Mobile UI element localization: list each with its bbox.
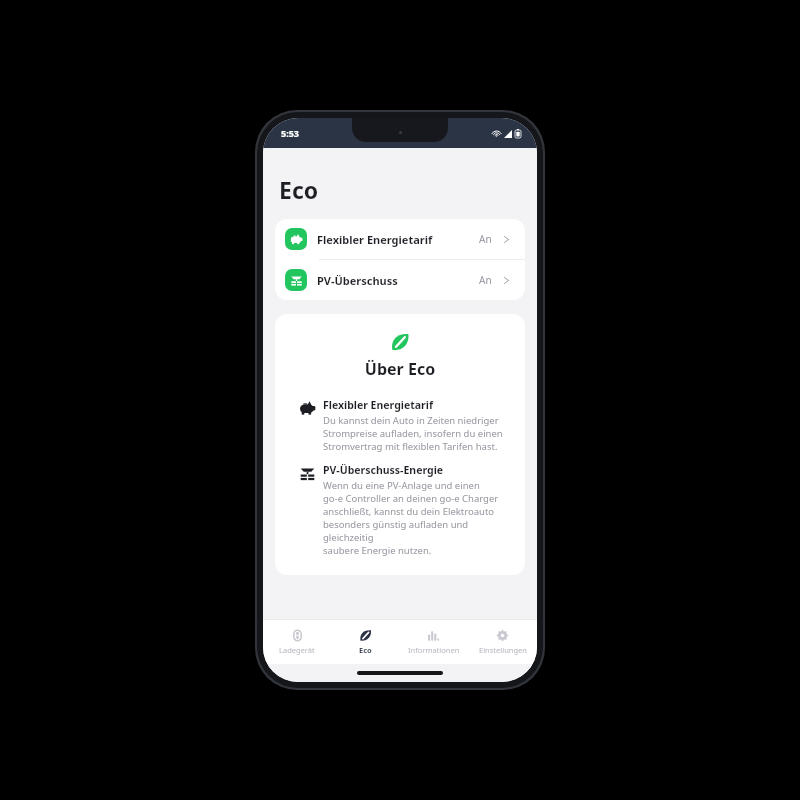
staticText: Eco <box>359 645 372 655</box>
staticText: PV-Überschuss-Energie <box>323 463 444 477</box>
staticText: Informationen <box>408 645 460 655</box>
button[interactable]: Flexibler Energietarif <box>275 219 525 259</box>
staticText: Ladegerät <box>279 645 315 655</box>
staticText: 5:53 <box>281 127 299 139</box>
staticText: An <box>479 232 492 246</box>
staticText: PV-Überschuss <box>317 273 479 288</box>
staticText: Flexibler Energietarif <box>317 232 479 247</box>
button[interactable]: PV-Überschuss <box>275 260 525 300</box>
staticText: Eco <box>279 174 319 205</box>
button[interactable]: Ladegerät <box>263 620 331 664</box>
staticText: Flexibler Energietarif <box>323 398 433 412</box>
staticText: Einstellungen <box>479 645 527 655</box>
button[interactable]: Informationen <box>399 620 468 664</box>
staticText: Du kannst dein Auto in Zeiten niedriger … <box>323 414 503 453</box>
staticText: Wenn du eine PV-Anlage und einen go-e Co… <box>323 479 509 557</box>
staticText: An <box>479 273 492 287</box>
staticText: Über Eco <box>291 358 509 380</box>
button[interactable]: Eco <box>331 620 399 664</box>
button[interactable]: Einstellungen <box>468 620 537 664</box>
